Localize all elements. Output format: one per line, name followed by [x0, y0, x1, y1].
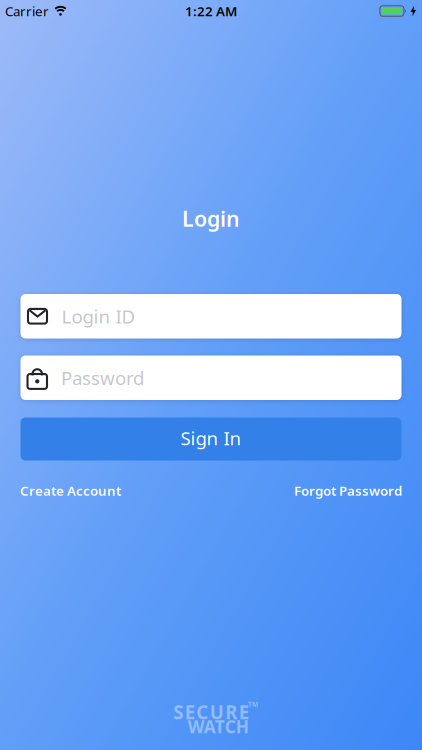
staticText: 1:22 AM [185, 2, 237, 20]
staticText: TM [248, 700, 258, 709]
button[interactable]: Login ID [20, 294, 401, 338]
staticText: WATCH [188, 715, 249, 738]
button[interactable]: Sign In [20, 417, 401, 460]
staticText: Login [182, 204, 240, 233]
button[interactable]: Password [20, 355, 401, 400]
staticText: Password [61, 365, 144, 390]
button[interactable]: Create Account [20, 482, 121, 499]
staticText: Carrier [5, 2, 49, 20]
staticText: SECURE [173, 699, 249, 724]
button[interactable]: Forgot Password [294, 482, 402, 499]
staticText: Sign In [180, 426, 241, 450]
staticText: Create Account [20, 482, 121, 499]
staticText: Forgot Password [294, 482, 402, 499]
staticText: Login ID [61, 304, 135, 329]
